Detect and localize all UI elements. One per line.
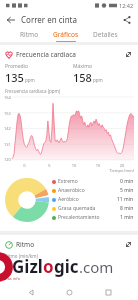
staticText: 11 min [117,196,134,203]
staticText: 120 [4,157,11,162]
staticText: 142 [4,126,11,131]
button[interactable]: Home [61,284,77,300]
button[interactable]: Gráficos [51,28,81,42]
staticText: 1 min [120,214,134,221]
staticText: Detalles [93,30,118,39]
staticText: 10 [62,163,86,168]
staticText: Frecuencia cardiaca (ppm) [5,88,61,94]
button[interactable]: Share [120,13,134,27]
button[interactable]: Ritmo [18,28,41,41]
staticText: gic [54,255,79,278]
staticText: 0 [12,163,37,168]
staticText: 153 [4,111,11,116]
button[interactable]: Back [4,13,18,27]
staticText: Frecuencia cardiaca [16,50,76,59]
staticText: Mas info [4,276,21,281]
staticText: ppm [25,77,35,83]
staticText: Aeróbico [58,196,79,203]
staticText: Anaeróbico [58,187,85,194]
staticText: 5 [37,163,62,168]
button[interactable]: Expand [123,50,134,59]
staticText: Extremo [58,178,78,185]
staticText: Ritmo [20,30,39,39]
staticText: Grasa quemada [58,205,96,212]
staticText: 164 [4,95,11,100]
staticText: Ritmo [16,240,35,249]
button[interactable]: Detalles [91,28,120,41]
staticText: 131 [4,142,11,147]
staticText: Gráficos [53,30,79,39]
staticText: Máximo [73,63,92,70]
staticText: Gizl [12,255,43,278]
staticText: Precalentamiento [58,214,100,221]
staticText: ppm [93,77,103,83]
staticText: Ritmo (min/km) [5,253,38,259]
staticText: 5 min [120,187,134,194]
button[interactable]: Back [23,284,39,300]
staticText: 135 [5,70,24,85]
staticText: Correr en cinta [21,14,77,25]
staticText: 20 [110,163,134,168]
staticText: 8 min [120,205,134,212]
staticText: o [43,255,54,278]
staticText: 0 min [120,178,134,185]
staticText: Tiempo (min) [12,168,134,173]
button[interactable]: Expand [123,239,134,250]
button[interactable]: Recents [100,284,116,300]
staticText: 12:42 [119,2,134,9]
staticText: 15 [86,163,110,168]
staticText: .com [79,257,114,277]
staticText: 158 [73,70,92,85]
staticText: Promedio [5,63,28,70]
